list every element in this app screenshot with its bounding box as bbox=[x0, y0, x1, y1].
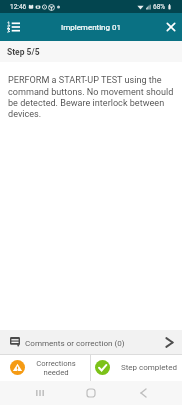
button[interactable]: Back bbox=[131, 381, 155, 405]
staticText: Step 5/5 bbox=[7, 47, 40, 57]
button[interactable]: Steps list bbox=[0, 13, 26, 41]
staticText: Implementing 01 bbox=[61, 23, 121, 32]
button[interactable]: Recents bbox=[28, 381, 52, 405]
button[interactable]: Comments or correction (0) bbox=[0, 330, 182, 354]
button[interactable]: Home bbox=[79, 381, 103, 405]
staticText: Corrections needed bbox=[36, 359, 76, 377]
staticText: PERFORM a START-UP TEST using the comman… bbox=[8, 75, 176, 119]
button[interactable]: Corrections needed bbox=[0, 354, 90, 381]
staticText: 68% bbox=[153, 3, 166, 11]
staticText: 12:46 bbox=[10, 3, 27, 11]
staticText: Comments or correction (0) bbox=[25, 338, 125, 347]
button[interactable]: Step completed bbox=[91, 354, 182, 381]
button[interactable]: Close bbox=[159, 13, 182, 41]
staticText: Step completed bbox=[121, 363, 177, 372]
